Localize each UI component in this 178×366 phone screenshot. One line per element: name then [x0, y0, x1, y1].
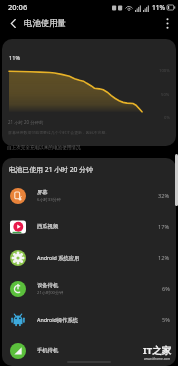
staticText: 自上次完全充电以来的电池使用情况 [7, 145, 81, 151]
button[interactable]: 手机待机 [2, 335, 176, 366]
staticText: 17% [158, 223, 170, 231]
staticText: 11% [9, 54, 21, 62]
button[interactable]: Back [2, 12, 24, 34]
staticText: 21小时00分钟 [37, 290, 64, 296]
button[interactable]: 西瓜视频 [2, 211, 176, 242]
staticText: www.ithome.com [144, 357, 171, 361]
staticText: 32% [158, 192, 170, 200]
staticText: 50% [161, 92, 170, 98]
staticText: 0% [164, 115, 170, 121]
staticText: 12% [158, 254, 170, 262]
button[interactable]: Android 系统应用 [2, 242, 176, 273]
staticText: 11% [152, 3, 165, 12]
staticText: 3% [162, 347, 170, 355]
button[interactable]: Android操作系统 [2, 304, 176, 335]
staticText: 6小时33分钟 [37, 197, 61, 203]
staticText: 5% [162, 316, 170, 324]
staticText: Android操作系统 [37, 316, 79, 323]
staticText: Android 系统应用 [37, 254, 80, 261]
staticText: 6% [162, 285, 170, 293]
staticText: IT之家 [143, 344, 172, 357]
staticText: 西瓜视频 [37, 223, 59, 230]
button[interactable]: More options [156, 12, 178, 34]
staticText: 电池使用量 [24, 18, 66, 29]
staticText: 设备待机 [37, 282, 59, 289]
staticText: 手机待机 [37, 347, 59, 354]
staticText: 100% [159, 68, 170, 74]
button[interactable]: 电池已使用 21 小时 20 分钟 [2, 158, 176, 180]
staticText: 屏幕 [37, 189, 48, 196]
staticText: 20:06 [8, 2, 28, 12]
button[interactable]: 设备待机 [2, 273, 176, 304]
staticText: 电池已使用 21 小时 20 分钟 [9, 165, 93, 174]
staticText: 屏幕使用数据可能需要过几个小时才会更新，因此不完整。 [8, 130, 110, 135]
button[interactable]: 屏幕 [2, 180, 176, 211]
staticText: 21 小时 20 分钟前 [8, 119, 44, 125]
